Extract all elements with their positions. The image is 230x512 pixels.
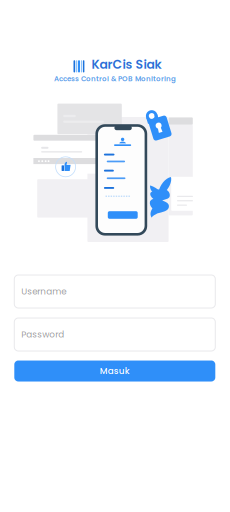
staticText: Username [21,285,66,298]
button[interactable]: Password [14,318,215,351]
staticText: Access Control & POB Monitoring [54,74,176,84]
staticText: Masuk [100,365,130,377]
button[interactable]: Username [14,275,215,308]
staticText: KarCis Siak [91,56,161,73]
staticText: Password [21,328,64,341]
button[interactable]: Masuk [14,360,215,381]
